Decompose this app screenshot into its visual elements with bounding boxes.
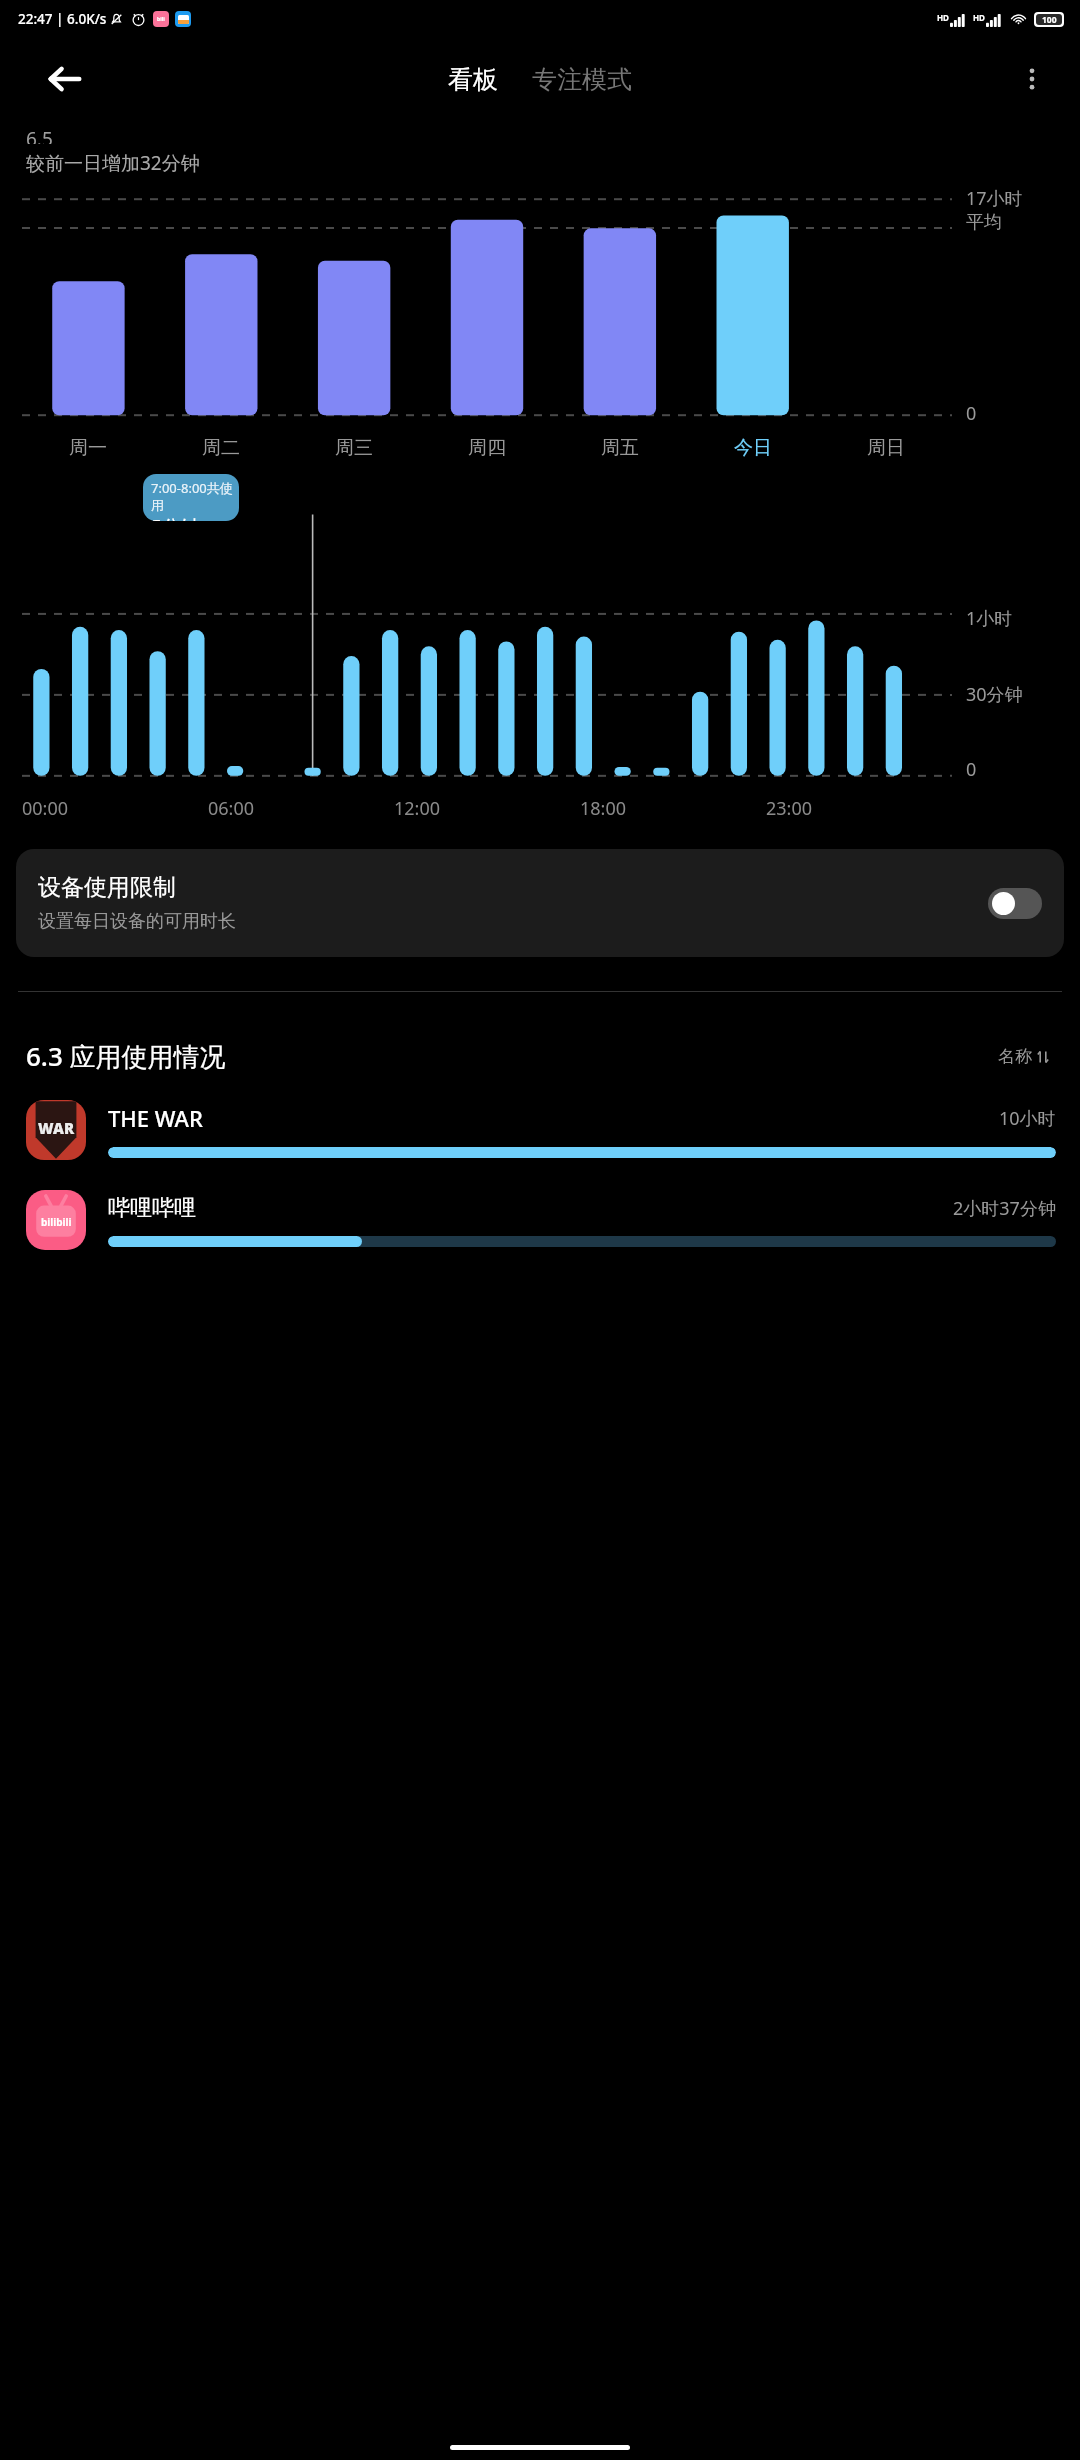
button[interactable]: 周三: [287, 436, 420, 460]
staticText: WAR: [38, 1118, 75, 1138]
staticText: 周一: [69, 436, 107, 460]
staticText: 专注模式: [532, 64, 632, 95]
staticText: 2小时37分钟: [953, 1196, 1056, 1221]
button[interactable]: 7:00-8:00共使用: [143, 474, 239, 521]
staticText: 0: [966, 757, 977, 782]
button[interactable]: 返回: [42, 56, 88, 102]
staticText: 18:00: [580, 796, 627, 821]
staticText: bilibili: [41, 1215, 72, 1229]
staticText: 看板: [448, 64, 498, 95]
button[interactable]: 看板: [442, 58, 504, 101]
staticText: 100: [1042, 14, 1057, 25]
staticText: 名称: [998, 1046, 1032, 1067]
button[interactable]: bilibili: [0, 1186, 1080, 1254]
staticText: 设置每日设备的可用时长: [38, 910, 236, 933]
staticText: 周二: [202, 436, 240, 460]
staticText: 1小时: [966, 606, 1013, 631]
button[interactable]: 更多选项: [1010, 57, 1054, 101]
staticText: 10小时: [999, 1106, 1056, 1131]
staticText: 周四: [468, 436, 506, 460]
staticText: 周五: [601, 436, 639, 460]
staticText: 7:00-8:00共使用: [151, 479, 239, 514]
button[interactable]: 设备使用限制开关: [988, 888, 1042, 919]
staticText: 6.3 应用使用情况: [26, 1038, 226, 1074]
button[interactable]: 周二: [154, 436, 287, 460]
staticText: 12:00: [394, 796, 441, 821]
button[interactable]: 设备使用限制: [16, 849, 1064, 957]
button[interactable]: 周一: [22, 436, 154, 460]
button[interactable]: WAR: [0, 1096, 1080, 1164]
staticText: THE WAR: [108, 1103, 203, 1133]
staticText: 今日: [734, 436, 772, 460]
staticText: 周日: [867, 436, 905, 460]
staticText: 23:00: [766, 796, 813, 821]
staticText: 哔哩哔哩: [108, 1194, 196, 1222]
staticText: 00:00: [22, 796, 69, 821]
staticText: 较前一日增加32分钟: [26, 150, 200, 176]
staticText: 5分钟: [151, 514, 200, 521]
staticText: 0: [966, 401, 977, 426]
staticText: 22:47 | 6.0K/s: [18, 10, 107, 28]
staticText: 平均: [966, 211, 1002, 234]
staticText: 周三: [335, 436, 373, 460]
button[interactable]: 今日: [686, 436, 819, 460]
button[interactable]: 周五: [553, 436, 686, 460]
button[interactable]: 周四: [420, 436, 553, 460]
staticText: 设备使用限制: [38, 873, 176, 902]
staticText: bili: [157, 16, 165, 23]
staticText: 6.5: [26, 126, 53, 144]
staticText: HD: [937, 12, 949, 23]
button[interactable]: 专注模式: [526, 58, 638, 101]
staticText: 06:00: [208, 796, 255, 821]
button[interactable]: 周日: [819, 436, 952, 460]
staticText: 30分钟: [966, 682, 1023, 707]
staticText: 17小时: [966, 186, 1023, 211]
button[interactable]: 名称: [992, 1040, 1056, 1073]
staticText: HD: [973, 12, 985, 23]
